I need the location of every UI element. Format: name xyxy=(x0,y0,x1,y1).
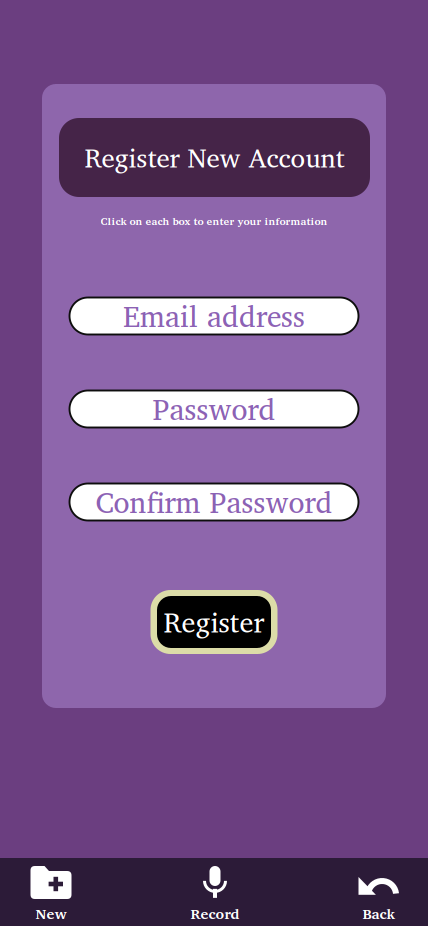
staticText: Record xyxy=(190,901,239,925)
staticText: Register xyxy=(163,599,264,645)
button[interactable]: Record xyxy=(160,858,270,926)
button[interactable]: Confirm Password xyxy=(69,483,358,520)
button[interactable]: New xyxy=(0,858,106,926)
staticText: Register New Account xyxy=(84,136,344,179)
staticText: Click on each box to enter your informat… xyxy=(100,212,327,230)
button[interactable]: Password xyxy=(69,390,358,427)
staticText: Confirm Password xyxy=(95,478,332,526)
button[interactable]: Register xyxy=(150,590,277,654)
staticText: Back xyxy=(362,901,395,925)
button[interactable]: Back xyxy=(324,858,428,926)
staticText: Email address xyxy=(123,292,305,340)
button[interactable]: Email address xyxy=(69,297,358,334)
staticText: New xyxy=(35,901,66,925)
staticText: Password xyxy=(152,385,275,433)
